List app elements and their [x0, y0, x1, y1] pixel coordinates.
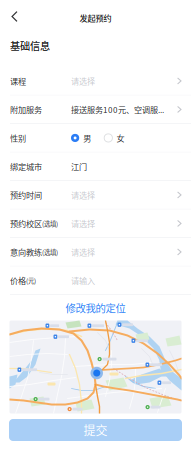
staticText: 请选择 — [71, 75, 95, 87]
staticText: 性别 — [10, 132, 26, 144]
button[interactable]: 预约校区 — [0, 209, 191, 238]
button[interactable]: 提交 — [9, 419, 182, 441]
staticText: 附加服务 — [10, 104, 42, 115]
button[interactable]: 附加服务 — [0, 95, 191, 124]
button[interactable]: 修改我的定位 — [57, 297, 133, 318]
button[interactable]: 绑定城市 — [0, 152, 191, 181]
button[interactable]: 预约时间 — [0, 181, 191, 209]
staticText: 价格 — [10, 275, 26, 286]
staticText: 请选择 — [71, 218, 95, 229]
staticText: 江门 — [71, 161, 87, 172]
staticText: 发起预约 — [79, 12, 111, 24]
staticText: 绑定城市 — [10, 161, 42, 172]
staticText: (选填) — [42, 219, 58, 228]
staticText: 请选择 — [71, 189, 95, 201]
staticText: 课程 — [10, 75, 26, 87]
staticText: 修改我的定位 — [65, 300, 125, 315]
button[interactable]: 返回 — [0, 0, 29, 33]
staticText: 男 — [83, 132, 91, 144]
button[interactable]: 课程 — [0, 67, 191, 95]
staticText: 请选择 — [71, 246, 95, 258]
staticText: 基础信息 — [10, 38, 50, 53]
staticText: 预约时间 — [10, 189, 42, 201]
staticText: 提交 — [83, 421, 107, 439]
staticText: 接送服务100元、空调服... — [71, 104, 164, 115]
button[interactable]: 价格 — [0, 266, 191, 295]
staticText: 女 — [116, 132, 124, 144]
staticText: 请输入 — [71, 275, 95, 286]
staticText: 预约校区 — [10, 218, 42, 229]
staticText: 意向教练 — [10, 246, 42, 258]
button[interactable]: 性别 — [0, 124, 191, 152]
staticText: (元) — [26, 276, 36, 285]
button[interactable]: 意向教练 — [0, 238, 191, 266]
staticText: (选填) — [42, 247, 58, 257]
